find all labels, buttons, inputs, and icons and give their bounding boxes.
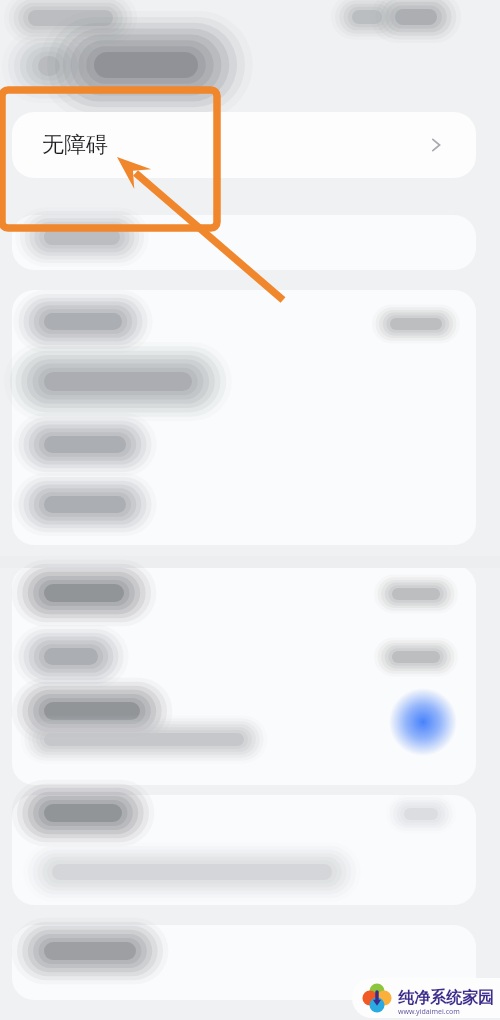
staticText: 纯净系统家园: [398, 988, 494, 1008]
staticText: www.yidaimei.com: [398, 1007, 460, 1017]
staticText: 无障碍: [42, 131, 108, 159]
button[interactable]: 无障碍: [12, 112, 476, 178]
